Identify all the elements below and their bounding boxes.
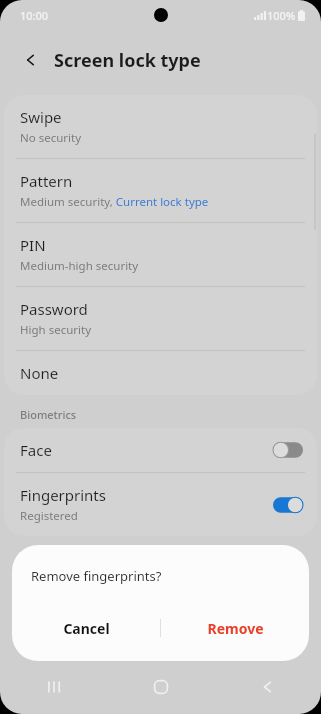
button[interactable]: Face xyxy=(4,428,317,472)
button[interactable]: Home xyxy=(137,663,185,711)
button[interactable]: Fingerprints xyxy=(4,473,317,536)
staticText: Pattern xyxy=(20,171,73,191)
button[interactable]: Cancel xyxy=(12,605,160,651)
staticText: None xyxy=(20,363,59,383)
button[interactable]: Off xyxy=(273,440,303,460)
button[interactable]: Swipe xyxy=(4,95,317,158)
staticText: High security xyxy=(20,322,92,338)
button[interactable]: PIN xyxy=(4,223,317,286)
button[interactable]: Back xyxy=(244,663,292,711)
staticText: PIN xyxy=(20,235,46,255)
staticText: Screen lock type xyxy=(54,48,201,73)
staticText: Cancel xyxy=(63,619,110,638)
staticText: Remove xyxy=(207,619,264,638)
button[interactable]: Recents xyxy=(30,663,78,711)
button[interactable]: Back xyxy=(16,45,46,75)
staticText: Medium-high security xyxy=(20,258,139,274)
staticText: Face xyxy=(20,440,52,460)
staticText: Swipe xyxy=(20,107,62,127)
button[interactable]: None xyxy=(4,351,317,395)
staticText: Biometrics xyxy=(20,407,77,422)
staticText: No security xyxy=(20,130,82,146)
staticText: 100% xyxy=(267,8,296,23)
button[interactable]: Pattern xyxy=(4,159,317,222)
staticText: Registered xyxy=(20,508,78,524)
staticText: Remove fingerprints? xyxy=(31,567,162,585)
staticText: Fingerprints xyxy=(20,485,106,505)
button[interactable]: Remove xyxy=(161,605,309,651)
staticText: Password xyxy=(20,299,88,319)
button[interactable]: On xyxy=(273,495,303,515)
staticText: 10:00 xyxy=(20,8,49,23)
staticText: Medium security, Current lock type xyxy=(20,194,209,210)
button[interactable]: Password xyxy=(4,287,317,350)
